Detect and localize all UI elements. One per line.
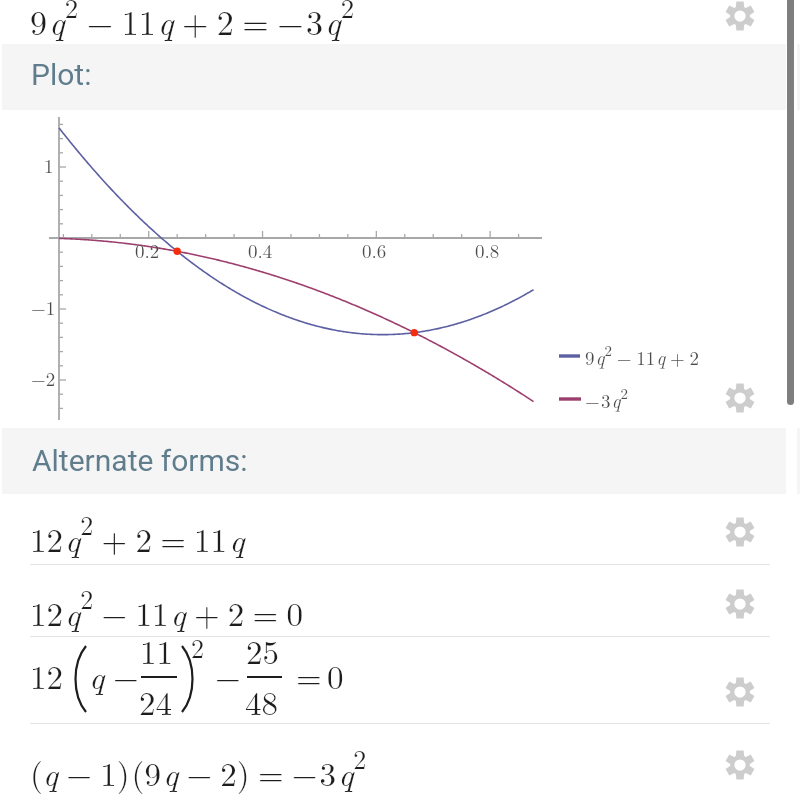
button[interactable]: 9 q squared minus 11 q plus 2 equals min… — [0, 0, 800, 44]
staticText: 24 — [139, 678, 172, 725]
staticText: 0 — [327, 652, 344, 699]
button[interactable]: Result options — [716, 0, 764, 40]
staticText: −1 — [31, 294, 56, 321]
button[interactable]: Options — [716, 741, 764, 789]
staticText: 11 — [140, 627, 173, 674]
button[interactable]: Options — [716, 668, 764, 716]
staticText: 0.2 — [135, 237, 160, 264]
staticText: 48 — [245, 678, 278, 725]
button[interactable]: q minus 1 times 9 q minus 2 equals minus… — [0, 724, 800, 801]
staticText: − — [215, 652, 241, 699]
staticText: 0.8 — [475, 237, 500, 264]
button[interactable]: 12 q squared minus 11 q plus 2 equals 0 — [0, 565, 800, 636]
button[interactable]: Options — [716, 580, 764, 628]
staticText: Alternate forms: — [32, 443, 248, 478]
staticText: (q − 1) (9 q − 2) = − 3 q2 — [30, 740, 367, 795]
button[interactable]: Plot options — [716, 374, 764, 422]
staticText: 0.4 — [248, 237, 273, 264]
staticText: 9 q2 − 11 q + 2 — [585, 339, 699, 371]
staticText: 2 — [191, 629, 205, 666]
staticText: − — [113, 652, 139, 699]
button[interactable]: Options — [716, 508, 764, 556]
staticText: 12 — [30, 652, 63, 699]
staticText: − 3 q2 — [585, 382, 628, 414]
staticText: 25 — [246, 627, 279, 674]
button[interactable]: 12 times q minus 11 over 24 squared minu… — [0, 637, 800, 723]
staticText: = — [296, 652, 322, 699]
staticText: 12 q2 − 11 q + 2 = 0 — [30, 580, 304, 635]
staticText: −2 — [31, 365, 56, 392]
button[interactable]: 12 q squared plus 2 equals 11 q — [0, 494, 800, 564]
staticText: 12 q2 + 2 = 11 q — [30, 506, 245, 561]
staticText: 9 q2 − 11 q + 2 = − 3 q2 — [30, 0, 355, 45]
staticText: q — [89, 652, 105, 699]
staticText: 0.6 — [362, 237, 387, 264]
staticText: Plot: — [31, 57, 92, 92]
staticText: 1 — [44, 152, 54, 179]
